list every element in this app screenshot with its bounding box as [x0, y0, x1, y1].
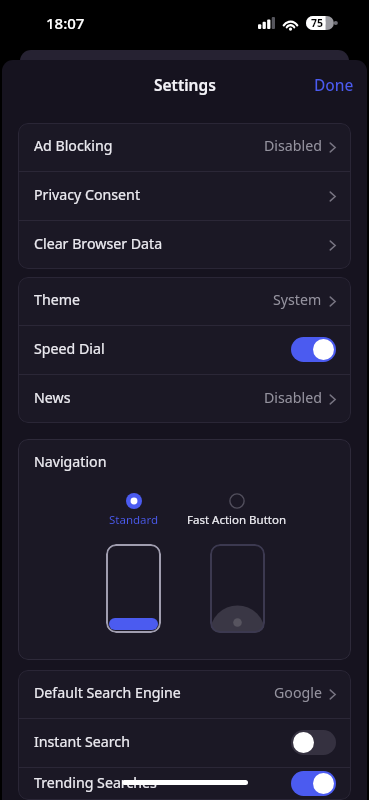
button[interactable]: Theme: [18, 277, 351, 325]
button[interactable]: Fast Action Button: [187, 493, 287, 633]
staticText: Speed Dial: [34, 339, 105, 358]
staticText: 18:07: [46, 13, 85, 33]
button[interactable]: Off: [291, 730, 336, 755]
staticText: Google: [274, 683, 322, 702]
staticText: Privacy Consent: [34, 185, 141, 204]
staticText: Disabled: [264, 136, 322, 155]
button[interactable]: Standard: [106, 493, 161, 633]
staticText: System: [273, 290, 322, 309]
staticText: Done: [314, 74, 354, 95]
staticText: Theme: [34, 290, 80, 309]
button[interactable]: Privacy Consent: [18, 172, 351, 220]
staticText: Standard: [109, 512, 159, 528]
button[interactable]: Ad Blocking: [18, 123, 351, 171]
button[interactable]: Done: [299, 64, 367, 103]
button[interactable]: Trending Searches: [18, 768, 351, 800]
staticText: Settings: [154, 74, 216, 95]
staticText: Clear Browser Data: [34, 234, 163, 253]
button[interactable]: On: [291, 771, 336, 796]
button[interactable]: On: [291, 337, 336, 362]
button[interactable]: Instant Search: [18, 719, 351, 767]
button[interactable]: Default Search Engine: [18, 670, 351, 718]
staticText: Instant Search: [34, 732, 130, 751]
staticText: Disabled: [264, 388, 322, 407]
staticText: Default Search Engine: [34, 683, 181, 702]
staticText: Trending Searches: [34, 773, 157, 792]
button[interactable]: Speed Dial: [18, 326, 351, 374]
staticText: 75: [311, 16, 324, 30]
staticText: News: [34, 388, 71, 407]
button[interactable]: Clear Browser Data: [18, 221, 351, 269]
staticText: Ad Blocking: [34, 136, 113, 155]
staticText: Fast Action Button: [187, 512, 287, 528]
button[interactable]: News: [18, 375, 351, 423]
staticText: Navigation: [34, 452, 107, 471]
